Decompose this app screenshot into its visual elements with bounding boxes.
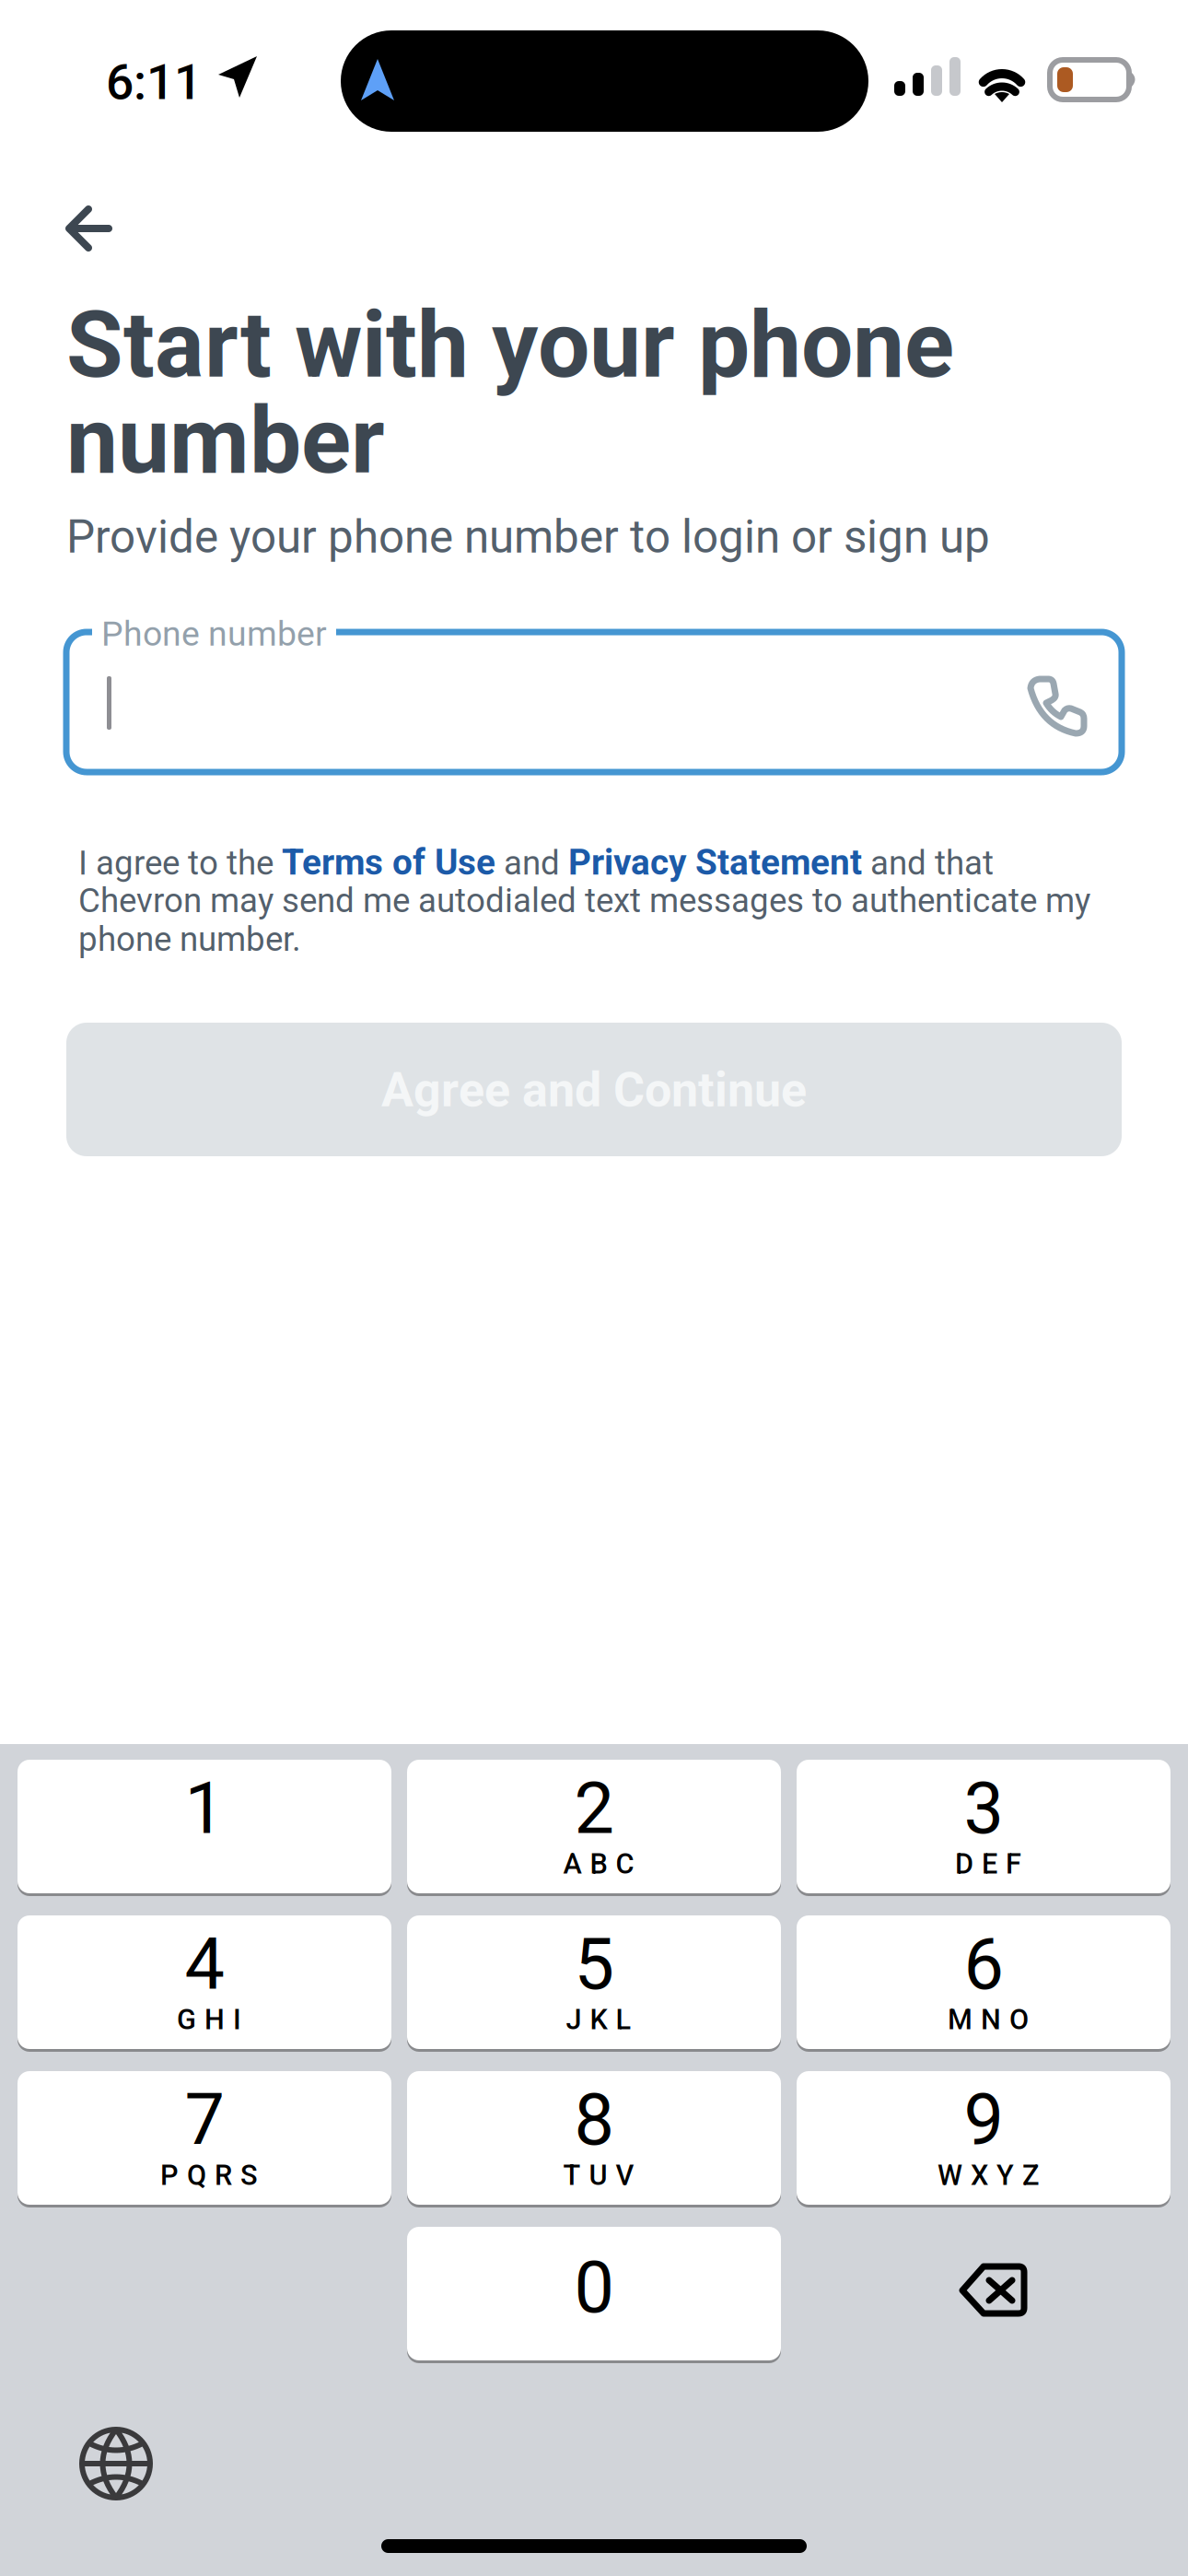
button[interactable]: 5 xyxy=(407,1915,781,2052)
staticText: JKL xyxy=(566,2003,631,2036)
staticText: 2 xyxy=(574,1767,614,1850)
staticText: Phone number xyxy=(101,614,327,654)
staticText: WXYZ xyxy=(938,2159,1039,2192)
button[interactable]: Next keyboard xyxy=(62,2407,172,2518)
staticText: 0 xyxy=(574,2246,614,2329)
button[interactable]: 7 xyxy=(17,2071,391,2207)
staticText: 7 xyxy=(185,2078,224,2162)
button[interactable]: Delete xyxy=(797,2227,1171,2360)
button[interactable]: Back xyxy=(53,181,162,282)
button[interactable]: 9 xyxy=(797,2071,1171,2207)
staticText: phone number. xyxy=(78,919,301,959)
button[interactable]: Agree and Continue xyxy=(66,1023,1122,1156)
button[interactable]: 2 xyxy=(407,1760,781,1896)
staticText: 8 xyxy=(574,2078,614,2162)
button[interactable]: Phone number xyxy=(66,632,1122,772)
button[interactable]: 6 xyxy=(797,1915,1171,2052)
staticText: PQRS xyxy=(160,2159,258,2192)
staticText: Start with your phone xyxy=(66,291,954,399)
staticText: 1 xyxy=(185,1767,224,1850)
button[interactable]: 4 xyxy=(17,1915,391,2052)
button[interactable]: 8 xyxy=(407,2071,781,2207)
staticText: 6 xyxy=(964,1923,1003,2006)
staticText: Chevron may send me autodialed text mess… xyxy=(78,881,1090,920)
staticText: 4 xyxy=(185,1923,224,2006)
staticText: DEF xyxy=(955,1847,1021,1880)
staticText: TUV xyxy=(563,2159,634,2192)
button[interactable]: 0 xyxy=(407,2227,781,2363)
staticText: number xyxy=(66,387,385,495)
button[interactable]: 3 xyxy=(797,1760,1171,1896)
staticText: GHI xyxy=(177,2003,241,2036)
staticText: 9 xyxy=(964,2078,1003,2162)
staticText: 3 xyxy=(964,1767,1003,1850)
staticText: ABC xyxy=(563,1847,634,1880)
staticText: Provide your phone number to login or si… xyxy=(66,510,990,564)
staticText: 5 xyxy=(574,1923,614,2006)
staticText: I agree to the Terms of Use and Privacy … xyxy=(78,842,994,883)
button[interactable]: 1 xyxy=(17,1760,391,1896)
staticText: 6:11 xyxy=(106,53,202,111)
staticText: MNO xyxy=(948,2003,1029,2036)
staticText: Agree and Continue xyxy=(381,1062,807,1118)
